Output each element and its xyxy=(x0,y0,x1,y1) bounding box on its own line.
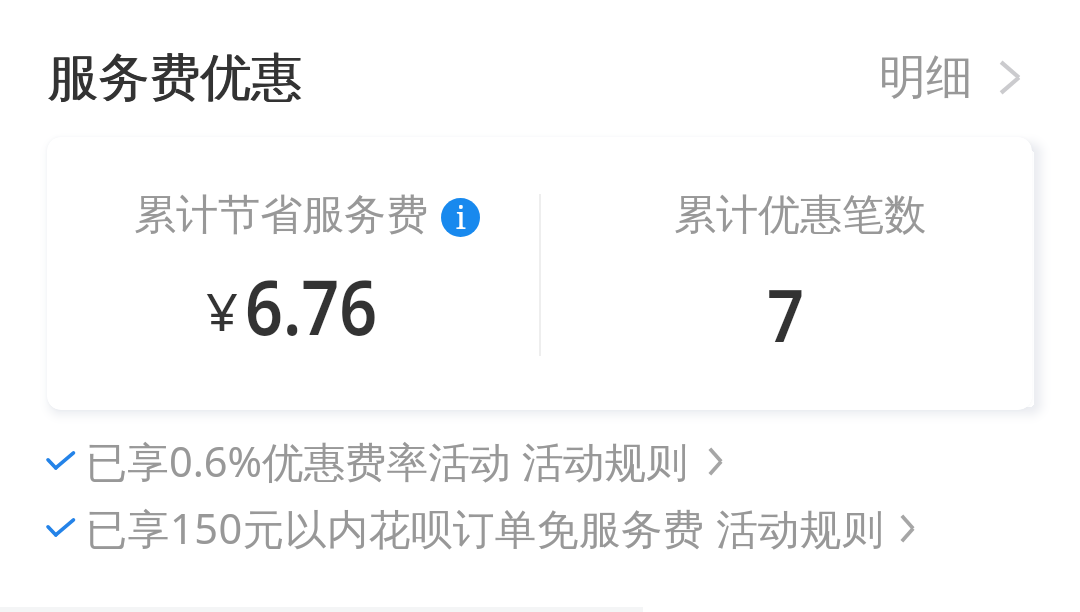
staticText: 累计节省服务费 xyxy=(134,189,428,242)
staticText: 7 xyxy=(767,265,805,363)
staticText: 服务费优惠 xyxy=(47,46,302,110)
staticText: 6.76 xyxy=(245,255,378,357)
staticText: ¥ xyxy=(206,276,239,345)
staticText: i xyxy=(456,198,466,236)
button[interactable]: More information xyxy=(441,198,480,237)
staticText: 累计优惠笔数 xyxy=(674,189,926,242)
staticText: 已享0.6%优惠费率活动 活动规则 xyxy=(86,433,688,485)
button[interactable]: 已享150元以内花呗订单免服务费 活动规则 xyxy=(40,500,915,552)
staticText: 明细 xyxy=(879,48,973,107)
button[interactable]: 明细 xyxy=(865,38,1035,117)
staticText: 已享150元以内花呗订单免服务费 活动规则 xyxy=(86,500,885,552)
button[interactable]: 已享0.6%优惠费率活动 活动规则 xyxy=(40,433,723,485)
